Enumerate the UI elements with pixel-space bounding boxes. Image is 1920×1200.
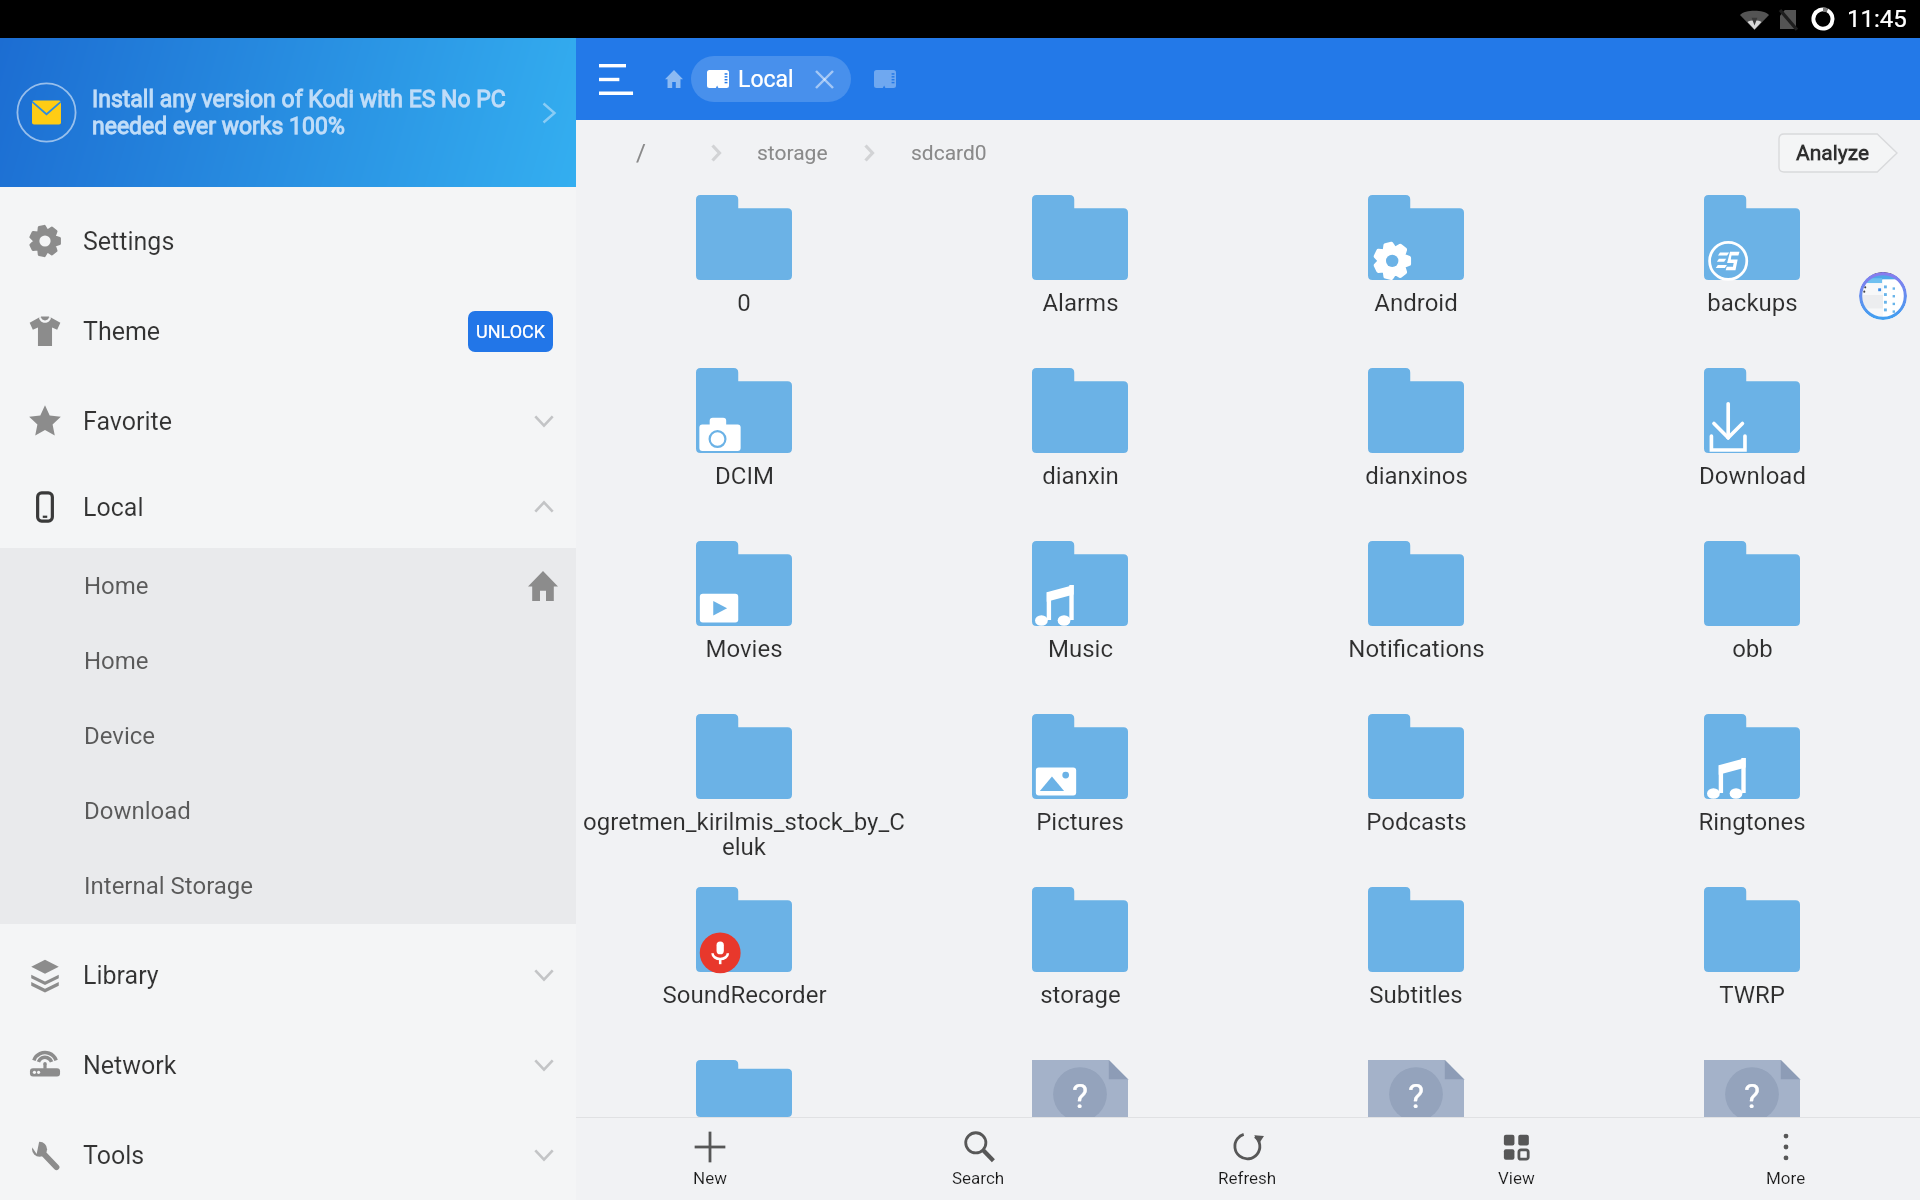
button[interactable]: View (1382, 1118, 1651, 1200)
button[interactable]: ? (912, 1060, 1248, 1117)
staticText: UNLOCK (476, 321, 546, 342)
button[interactable]: Alarms (912, 195, 1248, 368)
button[interactable]: Home (0, 548, 576, 623)
staticText: TWRP (1719, 981, 1785, 1009)
button[interactable]: 0 (576, 195, 912, 368)
staticText: 0 (737, 289, 751, 317)
button[interactable]: Home (657, 62, 691, 96)
staticText: DCIM (715, 462, 774, 490)
button[interactable]: New (576, 1118, 844, 1200)
staticText: Ringtones (1698, 808, 1806, 836)
staticText: ? (1408, 1076, 1425, 1116)
staticText: Download (84, 797, 191, 825)
staticText: Theme (83, 317, 161, 346)
button[interactable]: UNLOCK (468, 311, 553, 352)
staticText: storage (1040, 981, 1121, 1009)
staticText: Music (1048, 635, 1113, 663)
button[interactable] (576, 1060, 912, 1117)
button[interactable]: ogretmen_kirilmis_stock_by_C eluk (576, 714, 912, 887)
staticText: Tools (83, 1141, 145, 1170)
staticText: Android (1374, 289, 1458, 317)
button[interactable]: storage (757, 141, 828, 166)
button[interactable]: Library (0, 930, 576, 1020)
button[interactable]: Device (0, 698, 576, 773)
staticText: More (1766, 1168, 1806, 1188)
staticText: Refresh (1218, 1168, 1277, 1188)
staticText: Download (1699, 462, 1806, 490)
staticText: ogretmen_kirilmis_stock_by_C eluk (583, 808, 905, 861)
button[interactable]: Settings (0, 196, 576, 286)
button[interactable]: Analyze (1779, 134, 1897, 172)
staticText: Device (84, 722, 156, 750)
staticText: Subtitles (1369, 981, 1463, 1009)
button[interactable]: Add tab (867, 61, 903, 97)
staticText: Alarms (1042, 289, 1119, 317)
staticText: Local (83, 493, 144, 522)
staticText: Notifications (1348, 635, 1485, 663)
staticText: Search (952, 1168, 1005, 1188)
button[interactable]: Tools (0, 1110, 576, 1200)
staticText: ? (1072, 1076, 1089, 1116)
button[interactable]: Local (0, 466, 576, 548)
staticText: Analyze (1796, 141, 1870, 166)
button[interactable]: Subtitles (1248, 887, 1584, 1060)
button[interactable]: / (636, 139, 646, 167)
button[interactable]: Search (844, 1118, 1113, 1200)
staticText: Install any version of Kodi with ES No P… (92, 86, 524, 139)
staticText: ? (1744, 1076, 1761, 1116)
staticText: Local (738, 66, 794, 93)
button[interactable]: dianxin (912, 368, 1248, 541)
staticText: backups (1707, 289, 1798, 317)
button[interactable]: SoundRecorder (576, 887, 912, 1060)
button[interactable]: Download (0, 773, 576, 848)
staticText: Internal Storage (84, 872, 254, 900)
button[interactable]: Favorite (0, 376, 576, 466)
button[interactable]: Music (912, 541, 1248, 714)
button[interactable]: Movies (576, 541, 912, 714)
button[interactable]: Notifications (1248, 541, 1584, 714)
button[interactable]: Network (0, 1020, 576, 1110)
staticText: Movies (705, 635, 783, 663)
button[interactable]: More (1651, 1118, 1920, 1200)
button[interactable]: Android (1248, 195, 1584, 368)
button[interactable]: TWRP (1584, 887, 1920, 1060)
button[interactable]: Ringtones (1584, 714, 1920, 887)
button[interactable]: Download (1584, 368, 1920, 541)
button[interactable]: sdcard0 (911, 141, 987, 166)
staticText: Settings (83, 227, 175, 256)
staticText: Home (84, 647, 149, 675)
staticText: obb (1732, 635, 1773, 663)
staticText: New (693, 1168, 727, 1188)
button[interactable]: backups (1584, 195, 1920, 368)
button[interactable]: dianxinos (1248, 368, 1584, 541)
button[interactable]: Theme (0, 286, 576, 376)
button[interactable]: ? (1248, 1060, 1584, 1117)
button[interactable]: DCIM (576, 368, 912, 541)
staticText: dianxinos (1365, 462, 1468, 490)
staticText: SoundRecorder (662, 981, 827, 1009)
button[interactable]: storage (912, 887, 1248, 1060)
button[interactable]: Refresh (1113, 1118, 1382, 1200)
staticText: Favorite (83, 407, 172, 436)
button[interactable]: obb (1584, 541, 1920, 714)
staticText: dianxin (1042, 462, 1119, 490)
button[interactable]: Pictures (912, 714, 1248, 887)
button[interactable]: ? (1584, 1060, 1920, 1117)
staticText: Library (83, 961, 159, 990)
button[interactable]: Local (691, 56, 851, 102)
button[interactable]: Open navigation menu (591, 53, 643, 105)
staticText: Pictures (1036, 808, 1124, 836)
staticText: View (1498, 1168, 1535, 1188)
button[interactable]: Home (0, 623, 576, 698)
staticText: Home (84, 572, 149, 600)
button[interactable]: Podcasts (1248, 714, 1584, 887)
staticText: 11:45 (1847, 5, 1907, 33)
staticText: Network (83, 1051, 177, 1080)
button[interactable]: Install any version of Kodi with ES No P… (0, 38, 576, 187)
button[interactable]: Internal Storage (0, 848, 576, 923)
button[interactable]: Floating window (1859, 272, 1907, 320)
staticText: Podcasts (1366, 808, 1467, 836)
